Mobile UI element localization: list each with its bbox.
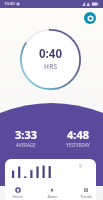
staticText: HRS — [44, 62, 58, 71]
staticText: 3:33 — [15, 127, 37, 142]
staticText: 5 — [79, 163, 82, 170]
button[interactable]: Trends — [69, 185, 103, 200]
staticText: 10:30 — [4, 1, 15, 7]
staticText: 4:48 — [67, 127, 89, 142]
staticText: YESTERDAY — [66, 142, 90, 148]
button[interactable]: 5 — [5, 159, 96, 200]
staticText: Trends — [80, 194, 92, 199]
staticText: 0:40 — [39, 46, 62, 62]
button[interactable]: Settings — [84, 12, 96, 24]
button[interactable]: Home — [0, 185, 35, 200]
staticText: AVERAGE — [16, 142, 36, 148]
button[interactable]: Alarm — [35, 185, 69, 200]
staticText: Home — [12, 194, 23, 199]
staticText: Alarm — [47, 194, 58, 199]
